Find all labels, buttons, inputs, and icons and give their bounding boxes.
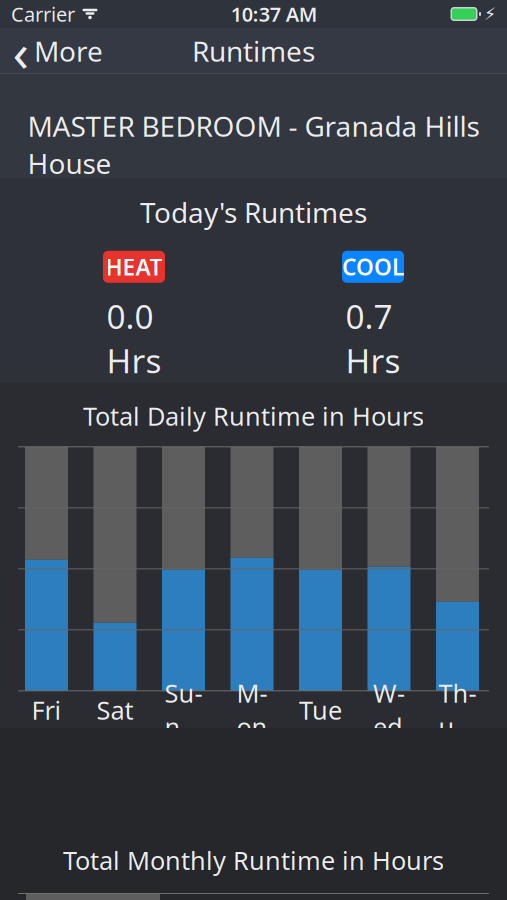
staticText: Mon xyxy=(236,676,267,743)
staticText: 0.0 Hrs xyxy=(106,294,161,382)
staticText: Today's Runtimes xyxy=(140,194,367,231)
staticText: Wed xyxy=(373,676,405,743)
staticText: COOL xyxy=(342,252,404,282)
staticText: Thu xyxy=(438,676,476,743)
button[interactable]: ‹ xyxy=(0,28,116,74)
staticText: Runtimes xyxy=(192,32,315,70)
staticText: Total Monthly Runtime in Hours xyxy=(63,843,444,877)
staticText: HEAT xyxy=(105,252,162,282)
staticText: More xyxy=(34,32,103,70)
staticText: Carrier xyxy=(11,1,75,27)
staticText: 10:37 AM xyxy=(231,1,318,27)
staticText: Tue xyxy=(299,693,342,727)
staticText: MASTER BEDROOM - Granada Hills House xyxy=(27,107,479,182)
staticText: 0.7 Hrs xyxy=(345,294,400,382)
staticText: ‹ xyxy=(12,16,29,86)
staticText: Total Daily Runtime in Hours xyxy=(83,399,424,433)
staticText: Sun xyxy=(164,676,202,743)
staticText: ⚡︎ xyxy=(484,4,496,24)
staticText: Sat xyxy=(96,693,133,727)
staticText: Fri xyxy=(31,693,61,727)
